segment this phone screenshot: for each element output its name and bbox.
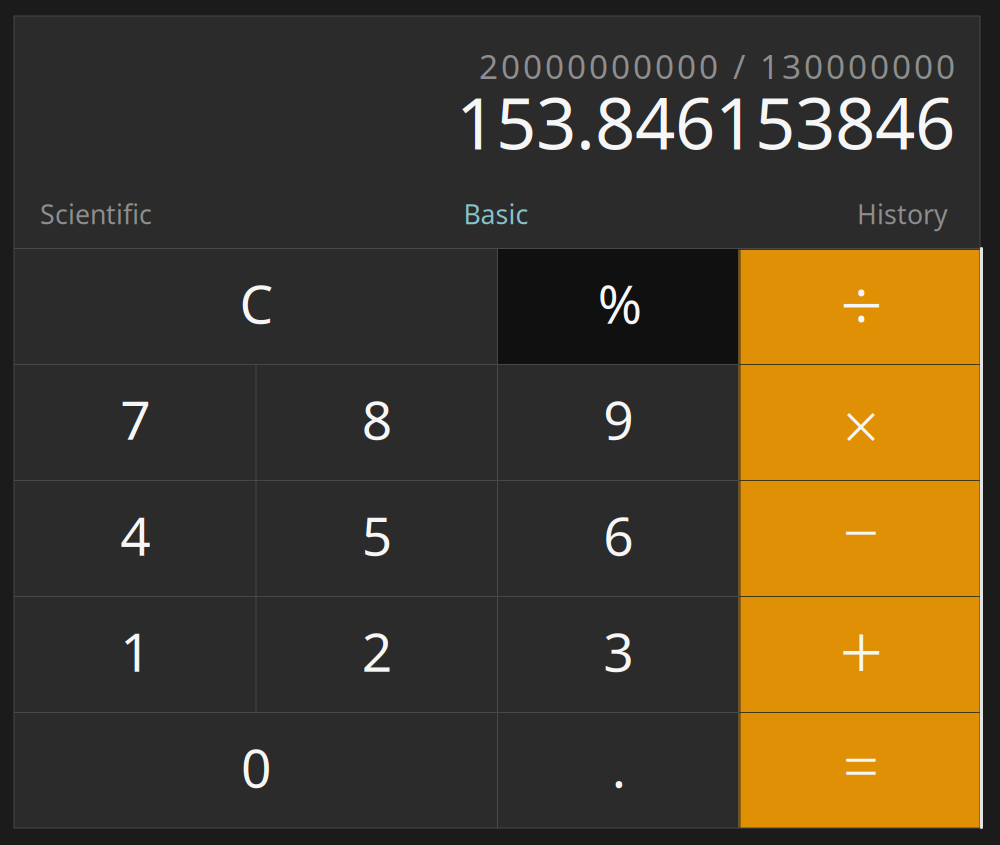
staticText: −: [843, 488, 880, 573]
button[interactable]: 5: [255, 480, 497, 596]
staticText: 7: [120, 384, 151, 454]
button[interactable]: Clear: [14, 248, 497, 364]
button[interactable]: Decimal point: [497, 712, 738, 828]
button[interactable]: 0: [14, 712, 497, 828]
staticText: Basic: [463, 196, 528, 232]
button[interactable]: Minus: [738, 480, 980, 596]
staticText: 4: [120, 500, 151, 570]
button[interactable]: Divide: [738, 248, 980, 364]
staticText: =: [843, 722, 880, 807]
button[interactable]: 3: [497, 596, 738, 712]
staticText: 0: [241, 732, 272, 802]
staticText: %: [598, 268, 642, 338]
staticText: ×: [843, 382, 880, 467]
button[interactable]: Plus: [738, 596, 980, 712]
staticText: History: [857, 196, 948, 232]
staticText: .: [612, 732, 626, 802]
button[interactable]: History: [748, 197, 948, 231]
button[interactable]: 9: [497, 364, 738, 480]
button[interactable]: Basic: [396, 197, 596, 231]
button[interactable]: 1: [14, 596, 255, 712]
button[interactable]: Percent: [497, 248, 738, 364]
button[interactable]: 8: [255, 364, 497, 480]
button[interactable]: 2: [255, 596, 497, 712]
button[interactable]: Scientific: [40, 197, 240, 231]
staticText: Scientific: [40, 196, 152, 232]
staticText: ÷: [840, 252, 883, 353]
staticText: 3: [603, 616, 634, 686]
staticText: 153.846153846: [456, 75, 955, 169]
staticText: 6: [603, 500, 634, 570]
button[interactable]: Multiply: [738, 364, 980, 480]
staticText: 8: [362, 384, 393, 454]
staticText: 2: [362, 616, 393, 686]
button[interactable]: 7: [14, 364, 255, 480]
button[interactable]: Equals: [738, 712, 980, 828]
button[interactable]: 4: [14, 480, 255, 596]
staticText: 5: [362, 500, 393, 570]
staticText: 9: [603, 384, 634, 454]
staticText: C: [239, 268, 273, 338]
staticText: 1: [120, 616, 151, 686]
staticText: 20000000000 / 130000000: [479, 44, 955, 88]
button[interactable]: 6: [497, 480, 738, 596]
staticText: +: [839, 599, 883, 701]
